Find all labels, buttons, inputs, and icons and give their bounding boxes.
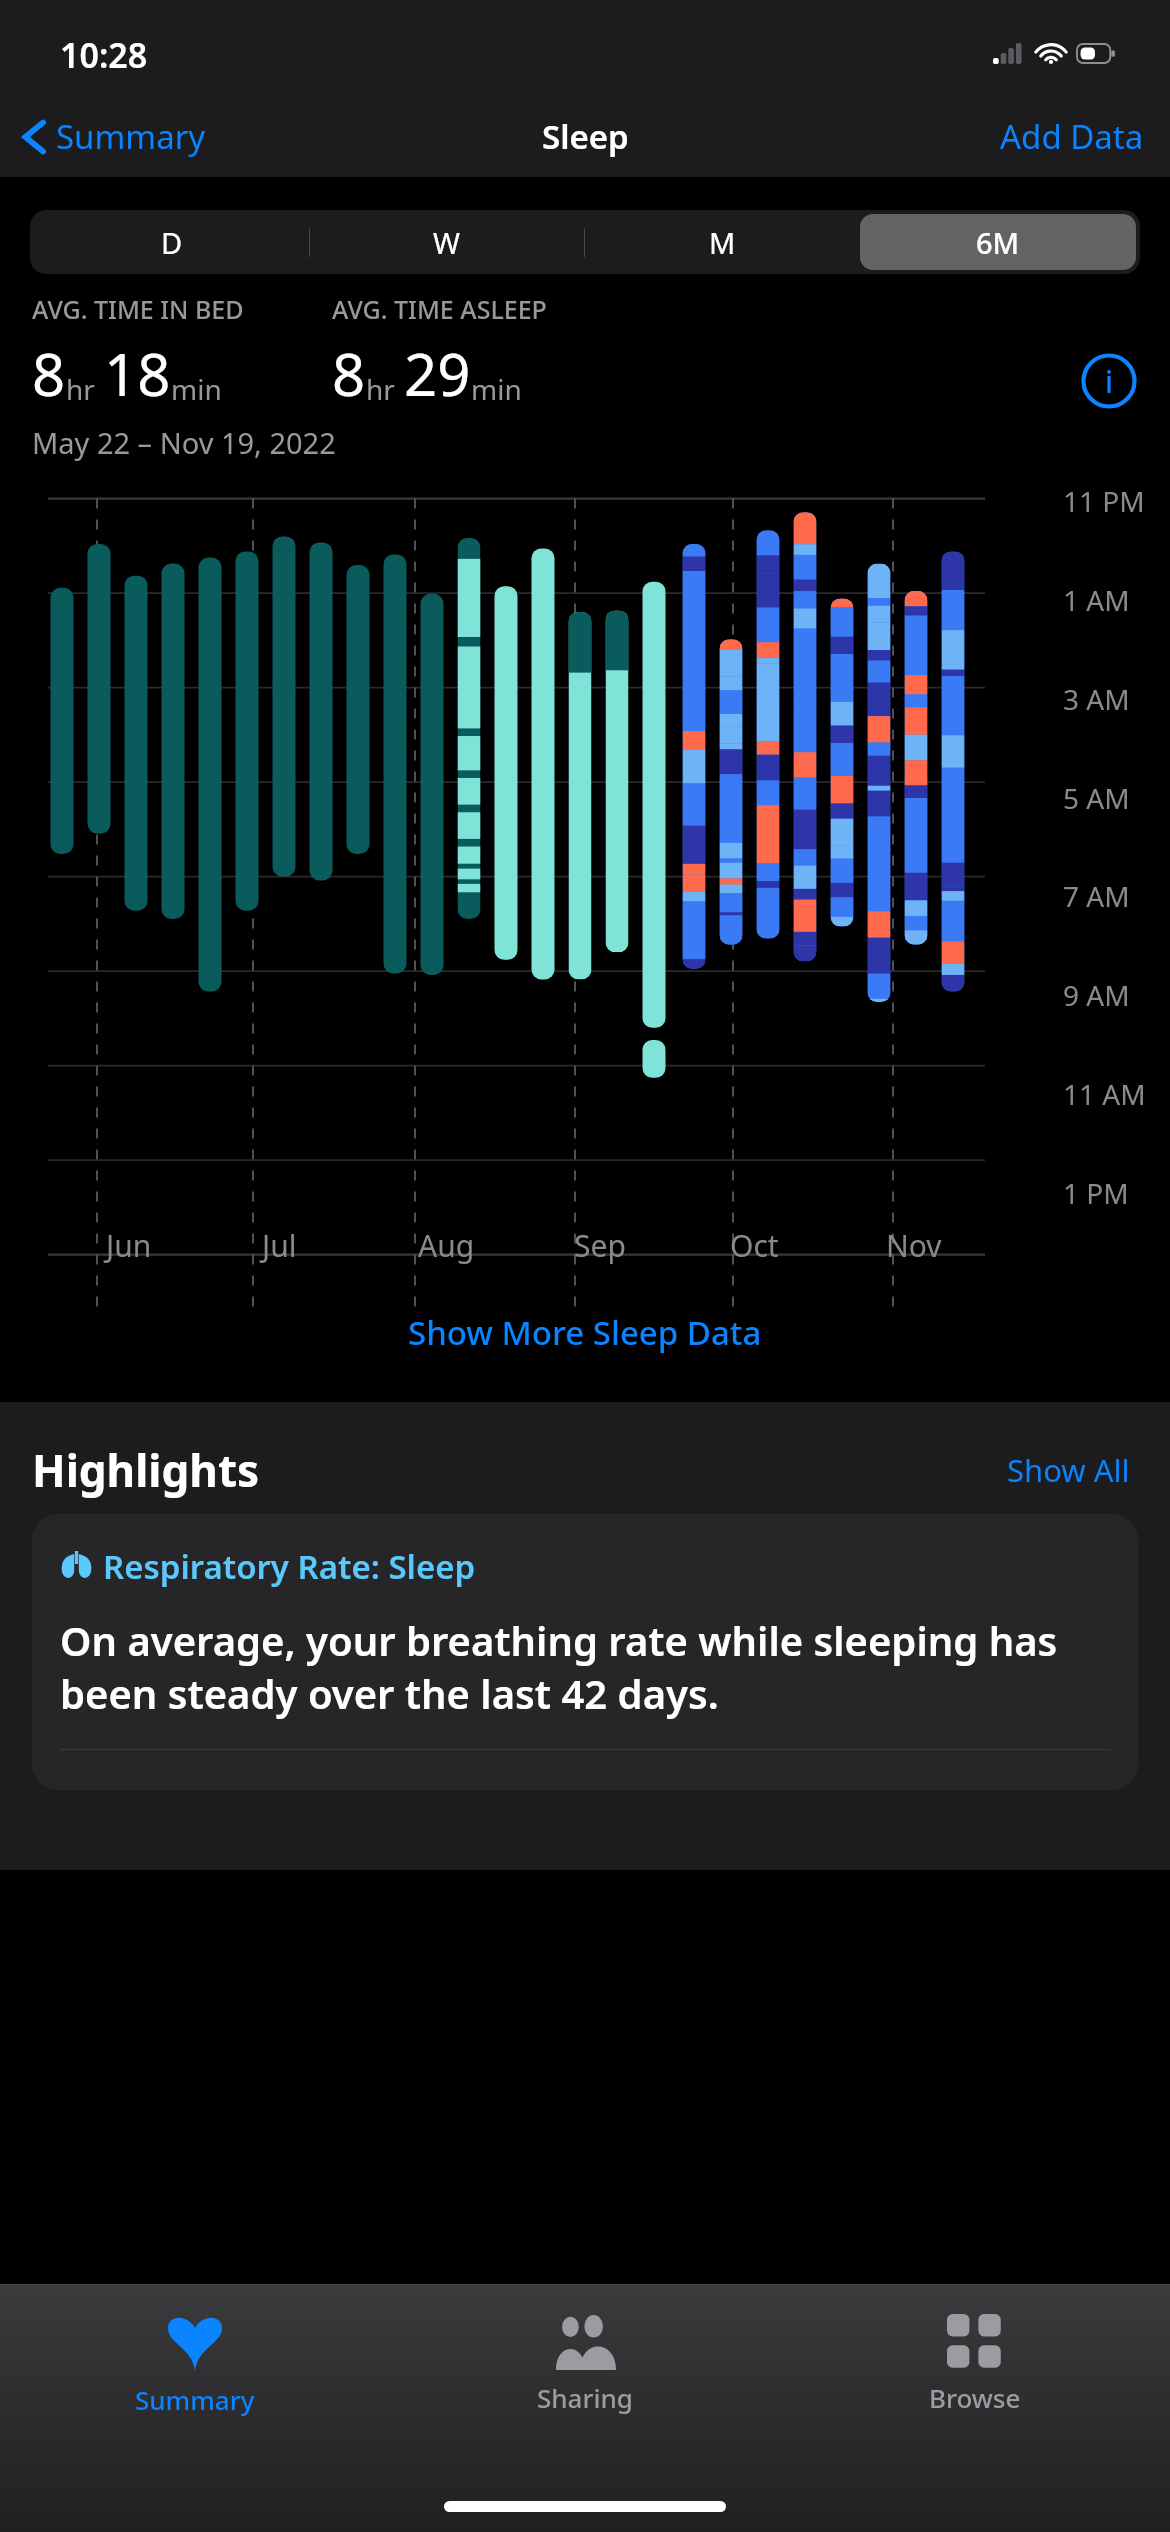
staticText: min: [471, 370, 522, 408]
button[interactable]: Summary: [0, 2306, 390, 2425]
staticText: hr: [66, 370, 95, 408]
staticText: 10:28: [60, 32, 148, 78]
staticText: Jul: [262, 1225, 297, 1266]
staticText: On average, your breathing rate while sl…: [60, 1613, 1110, 1721]
button[interactable]: Browse: [780, 2306, 1170, 2423]
button[interactable]: Sharing: [390, 2306, 780, 2423]
staticText: 3 AM: [1063, 680, 1130, 718]
staticText: 9 AM: [1063, 976, 1130, 1014]
staticText: Sharing: [537, 2380, 633, 2415]
staticText: Sep: [574, 1225, 626, 1266]
staticText: W: [433, 223, 460, 262]
staticText: hr: [366, 370, 395, 408]
staticText: Summary: [135, 2382, 255, 2417]
staticText: 6M: [976, 223, 1020, 262]
staticText: M: [709, 223, 736, 262]
staticText: Add Data: [1000, 114, 1144, 159]
staticText: Respiratory Rate: Sleep: [103, 1544, 476, 1589]
staticText: Show More Sleep Data: [408, 1310, 762, 1355]
staticText: Summary: [56, 114, 206, 159]
button[interactable]: Respiratory Rate: Sleep: [32, 1514, 1138, 1790]
staticText: Oct: [730, 1225, 779, 1266]
button[interactable]: M: [584, 214, 860, 270]
staticText: Highlights: [32, 1440, 260, 1500]
staticText: 7 AM: [1063, 877, 1130, 915]
button[interactable]: Show All: [999, 1441, 1138, 1499]
staticText: Nov: [886, 1225, 942, 1266]
staticText: 5 AM: [1063, 779, 1130, 817]
staticText: D: [161, 223, 183, 262]
button[interactable]: Summary: [0, 106, 220, 167]
staticText: 11 AM: [1063, 1075, 1146, 1113]
button[interactable]: W: [309, 214, 584, 270]
staticText: Aug: [418, 1225, 475, 1266]
staticText: May 22 – Nov 19, 2022: [32, 423, 336, 462]
staticText: 11 PM: [1063, 482, 1145, 520]
staticText: min: [171, 370, 222, 408]
staticText: Browse: [929, 2380, 1021, 2415]
button[interactable]: About this data: [1080, 352, 1138, 410]
staticText: i: [1105, 361, 1114, 402]
button[interactable]: D: [34, 214, 309, 270]
staticText: Sleep: [542, 114, 629, 159]
staticText: Jun: [106, 1225, 152, 1266]
staticText: AVG. TIME ASLEEP: [332, 292, 547, 326]
staticText: AVG. TIME IN BED: [32, 292, 244, 326]
staticText: 1 AM: [1063, 581, 1130, 619]
staticText: 29: [404, 334, 471, 413]
staticText: 18: [104, 334, 171, 413]
button[interactable]: Add Data: [974, 104, 1170, 169]
button[interactable]: Show More Sleep Data: [0, 1296, 1170, 1369]
staticText: 8: [332, 334, 366, 413]
staticText: Show All: [1007, 1449, 1130, 1491]
staticText: 1 PM: [1063, 1174, 1129, 1212]
staticText: 8: [32, 334, 66, 413]
button[interactable]: 6M: [860, 214, 1136, 270]
